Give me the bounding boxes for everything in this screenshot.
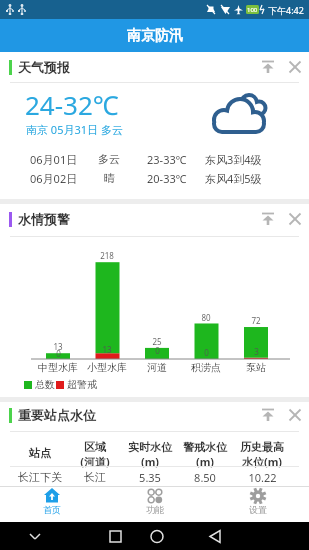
staticText: 功能 bbox=[146, 504, 164, 515]
button[interactable]: 长江下关 bbox=[0, 468, 309, 486]
staticText: 24-32℃ bbox=[25, 87, 119, 122]
button[interactable]: 06月02日 bbox=[0, 169, 309, 188]
staticText: 首页 bbox=[43, 504, 61, 515]
staticText: 06月02日 bbox=[30, 171, 78, 186]
staticText: 20-33℃ bbox=[147, 171, 187, 186]
staticText: 设置 bbox=[249, 504, 267, 515]
staticText: 5.35 bbox=[139, 470, 161, 485]
staticText: 东风4到5级 bbox=[205, 171, 262, 186]
button[interactable] bbox=[195, 522, 235, 550]
staticText: 区域 (河道) bbox=[80, 440, 110, 469]
staticText: 13 bbox=[102, 344, 112, 355]
staticText: 历史最高 水位(m) bbox=[240, 440, 284, 469]
staticText: 0 bbox=[204, 347, 209, 358]
button[interactable]: 设置 bbox=[228, 486, 288, 522]
staticText: 72 bbox=[251, 315, 261, 326]
staticText: 218 bbox=[100, 250, 114, 261]
button[interactable] bbox=[137, 522, 177, 550]
staticText: 总数 bbox=[35, 378, 55, 391]
staticText: 实时水位 (m) bbox=[128, 440, 172, 469]
staticText: 重要站点水位 bbox=[18, 407, 96, 423]
staticText: 南京防汛 bbox=[127, 27, 183, 45]
staticText: 中型水库 bbox=[38, 361, 78, 374]
staticText: 23-33℃ bbox=[147, 152, 187, 167]
staticText: 长江 bbox=[84, 470, 106, 484]
staticText: 多云 bbox=[98, 152, 120, 166]
staticText: 超警戒 bbox=[67, 378, 97, 391]
button[interactable] bbox=[258, 209, 278, 229]
button[interactable]: 首页 bbox=[22, 486, 82, 522]
button[interactable] bbox=[285, 209, 305, 229]
staticText: 天气预报 bbox=[18, 59, 70, 75]
staticText: 积涝点 bbox=[191, 361, 221, 374]
staticText: 小型水库 bbox=[87, 361, 127, 374]
button[interactable] bbox=[95, 522, 135, 550]
staticText: 10.22 bbox=[248, 470, 277, 485]
staticText: 80 bbox=[201, 312, 211, 323]
staticText: 0 bbox=[155, 345, 160, 356]
staticText: 晴 bbox=[104, 171, 115, 185]
button[interactable]: 06月01日 bbox=[0, 150, 309, 169]
staticText: 水情预警 bbox=[18, 211, 70, 227]
staticText: 下午4:42 bbox=[268, 4, 304, 16]
button[interactable] bbox=[258, 57, 278, 77]
staticText: 南京 05月31日 多云 bbox=[26, 122, 123, 137]
staticText: 06月01日 bbox=[30, 152, 78, 167]
staticText: 25 bbox=[152, 336, 162, 347]
staticText: 站点 bbox=[29, 446, 51, 460]
button[interactable] bbox=[285, 57, 305, 77]
staticText: 3 bbox=[254, 346, 259, 357]
button[interactable] bbox=[285, 405, 305, 425]
staticText: 长江下关 bbox=[18, 470, 62, 484]
staticText: 东风3到4级 bbox=[205, 152, 262, 167]
staticText: 警戒水位 (m) bbox=[183, 440, 227, 469]
staticText: 泵站 bbox=[246, 361, 266, 374]
button[interactable]: 功能 bbox=[125, 486, 185, 522]
staticText: 0 bbox=[56, 348, 61, 359]
button[interactable] bbox=[258, 405, 278, 425]
staticText: 河道 bbox=[147, 361, 167, 374]
staticText: 8.50 bbox=[194, 470, 216, 485]
staticText: 100 bbox=[247, 6, 258, 14]
staticText: 13 bbox=[53, 341, 63, 352]
